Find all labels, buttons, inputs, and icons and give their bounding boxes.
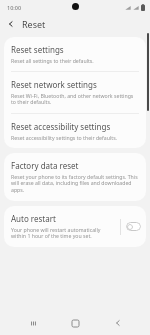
button[interactable]: Recent apps	[23, 313, 43, 333]
button[interactable]: Reset accessibility settings	[4, 114, 146, 148]
staticText: Auto restart	[11, 213, 56, 224]
staticText: Factory data reset	[11, 160, 79, 171]
staticText: 10:00	[7, 4, 22, 11]
button[interactable]: Home	[65, 313, 85, 333]
button[interactable]: Factory data reset	[4, 153, 146, 201]
staticText: Reset Wi-Fi, Bluetooth, and other networ…	[11, 92, 138, 106]
staticText: Reset accessibility settings	[11, 121, 111, 132]
button[interactable]: Back	[3, 16, 19, 32]
staticText: Your phone will restart automatically wi…	[11, 226, 116, 240]
staticText: Reset	[22, 18, 46, 30]
staticText: Reset network settings	[11, 79, 97, 90]
button[interactable]: Reset network settings	[4, 72, 146, 113]
button[interactable]: Auto restart toggle	[126, 222, 141, 231]
button[interactable]: Reset settings	[4, 37, 146, 71]
button[interactable]: Auto restart	[4, 206, 146, 247]
staticText: Reset your phone to its factory default …	[11, 173, 138, 194]
staticText: Reset accessibility settings to their de…	[11, 134, 118, 141]
button[interactable]: Back	[108, 313, 128, 333]
staticText: Reset all settings to their defaults.	[11, 57, 94, 64]
staticText: Reset settings	[11, 44, 64, 55]
